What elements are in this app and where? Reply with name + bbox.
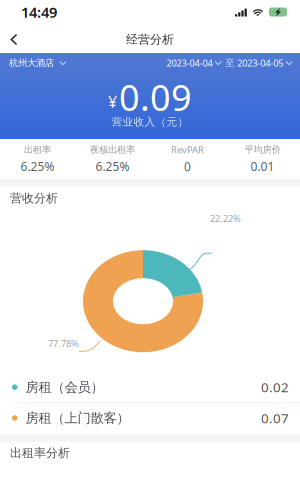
staticText: 22.22% <box>210 212 241 225</box>
staticText: 6.25% <box>95 158 129 174</box>
staticText: RevPAR <box>171 143 204 156</box>
staticText: 杭州大酒店 <box>9 57 54 69</box>
staticText: 0.09 <box>119 73 192 121</box>
staticText: 0 <box>184 159 191 175</box>
staticText: 2023-04-04 <box>166 57 212 69</box>
staticText: 0.02 <box>261 378 289 396</box>
button[interactable]: 2023-04-05 <box>237 53 300 73</box>
staticText: 6.25% <box>20 158 54 174</box>
staticText: ¥ <box>108 91 117 112</box>
staticText: 房租（上门散客） <box>25 410 129 426</box>
staticText: 77.78% <box>48 337 79 350</box>
staticText: 14:49 <box>21 2 57 22</box>
staticText: 营业收入（元） <box>111 115 188 128</box>
button[interactable]: 房租（上门散客） <box>0 403 300 434</box>
staticText: 至 <box>225 57 234 69</box>
staticText: 0.01 <box>250 158 274 174</box>
staticText: 出租率 <box>24 144 51 155</box>
staticText: 出租率分析 <box>10 446 70 460</box>
staticText: 经营分析 <box>126 32 174 47</box>
staticText: 夜核出租率 <box>90 144 135 155</box>
staticText: 房租（会员） <box>25 379 103 395</box>
staticText: 0.07 <box>261 409 289 427</box>
staticText: 2023-04-05 <box>237 57 283 69</box>
button[interactable]: 2023-04-04 <box>166 53 222 73</box>
button[interactable]: Back <box>0 26 28 53</box>
staticText: 营收分析 <box>10 191 58 205</box>
button[interactable]: 杭州大酒店 <box>0 53 67 73</box>
staticText: 平均房价 <box>244 144 280 155</box>
button[interactable]: 房租（会员） <box>0 372 300 403</box>
